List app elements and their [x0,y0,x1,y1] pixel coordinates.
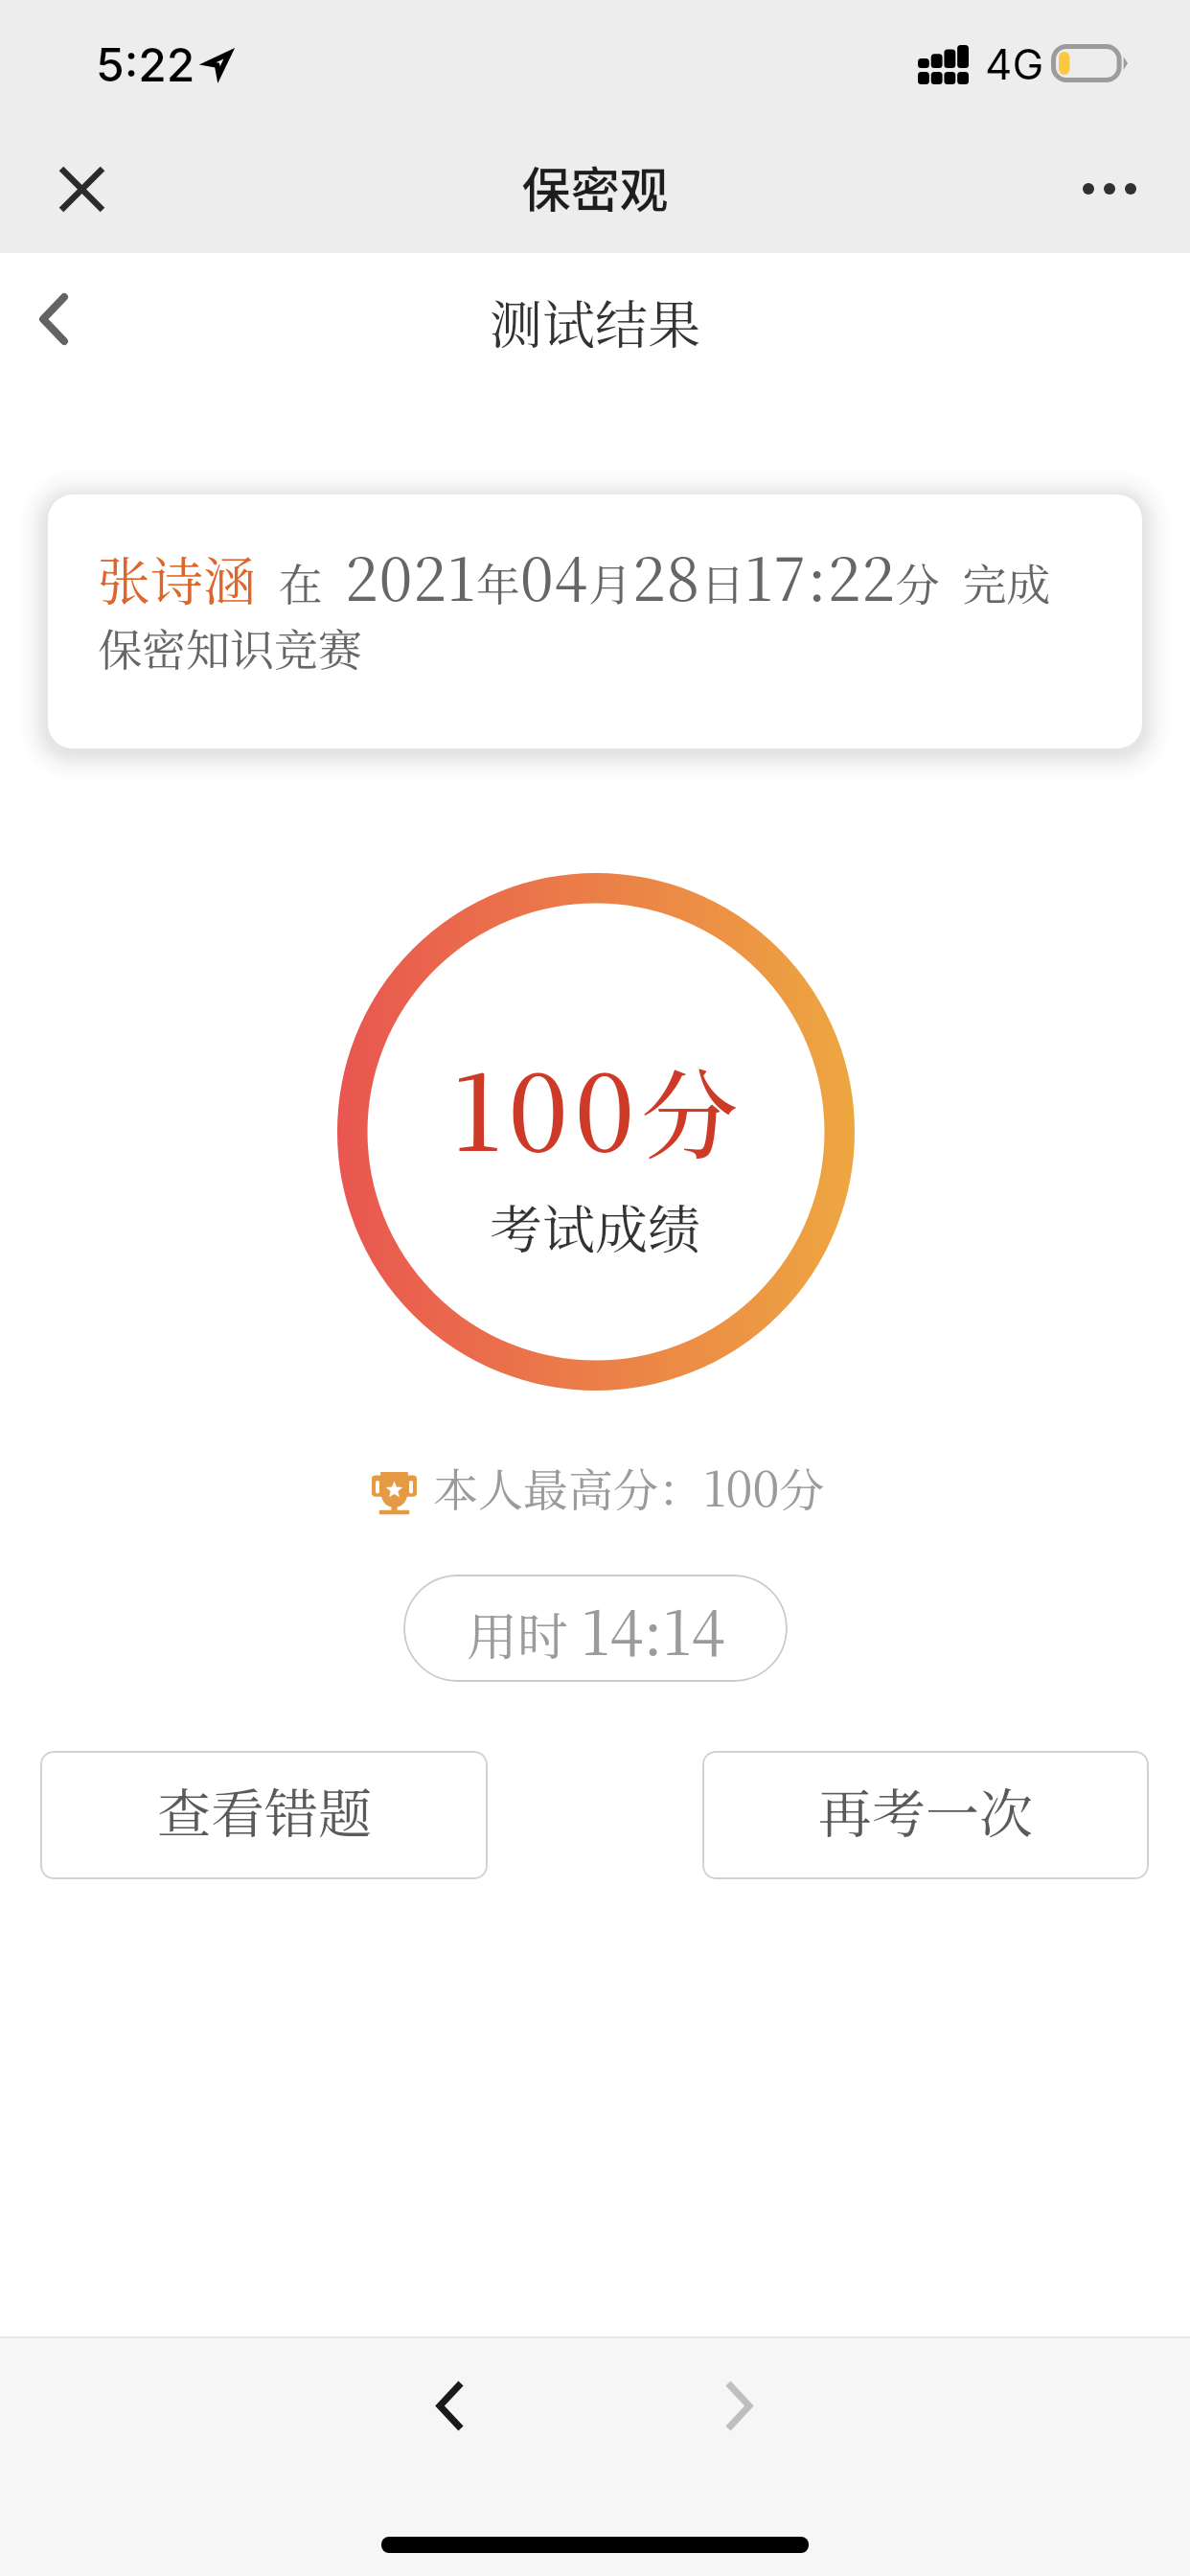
staticText: 测试结果 [0,284,1190,359]
staticText: 张诗涵 在 2021年04月28日17:22分 完成 保密知识竞赛 [98,533,1051,679]
staticText: 保密观 [0,151,1190,222]
staticText: 5:22 [96,36,195,92]
staticText: 4G [985,38,1044,89]
button[interactable]: More options [1066,146,1153,232]
button[interactable]: 用时 14:14 [403,1575,788,1682]
button[interactable]: Forward [696,2362,782,2449]
staticText: 再考一次 [818,1772,1033,1849]
staticText: 考试成绩 [0,1188,1190,1264]
staticText: 用时 14:14 [467,1585,725,1672]
button[interactable]: Close [38,146,125,232]
button[interactable]: 再考一次 [702,1751,1149,1879]
staticText: 100分 [0,1029,1190,1181]
button[interactable]: Back [8,266,100,372]
button[interactable]: 张诗涵 在 2021年04月28日17:22分 完成 保密知识竞赛 [48,494,1142,748]
staticText: 本人最高分：100分 [433,1451,825,1520]
button[interactable]: Back [407,2362,493,2449]
button[interactable]: 查看错题 [40,1751,488,1879]
staticText: 查看错题 [157,1772,372,1849]
